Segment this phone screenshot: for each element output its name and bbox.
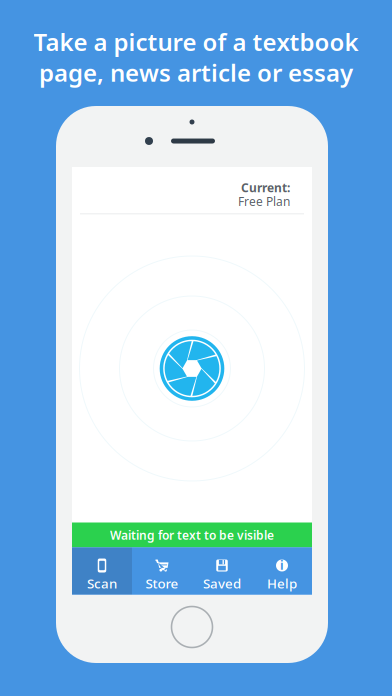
- button[interactable]: i: [252, 547, 312, 594]
- button[interactable]: Store: [132, 547, 192, 594]
- staticText: Waiting for text to be visible: [110, 527, 274, 543]
- staticText: Current:: [241, 180, 290, 195]
- button[interactable]: Scan: [72, 547, 132, 594]
- staticText: Free Plan: [238, 193, 290, 209]
- staticText: Take a picture of a textbook: [33, 26, 358, 57]
- staticText: Store: [145, 574, 178, 592]
- button[interactable]: Saved: [192, 547, 252, 594]
- staticText: Help: [267, 574, 297, 592]
- staticText: Saved: [203, 574, 241, 592]
- staticText: i: [280, 557, 284, 573]
- staticText: page, news article or essay: [39, 56, 353, 88]
- staticText: Scan: [87, 574, 117, 592]
